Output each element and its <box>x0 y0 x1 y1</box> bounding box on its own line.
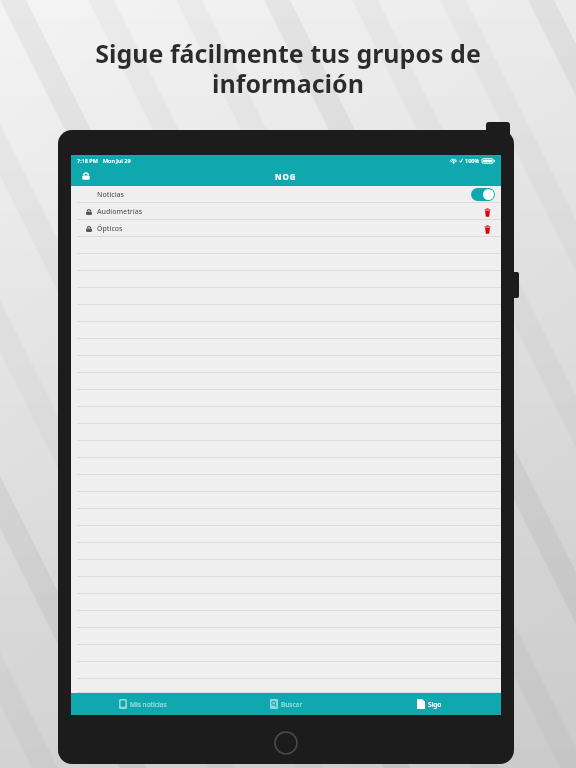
staticText: Mis noticias <box>130 700 167 709</box>
staticText: Sigo <box>428 700 442 709</box>
staticText: 7:18 PM <box>77 157 98 164</box>
button[interactable]: Toggle Noticias <box>471 188 495 201</box>
button[interactable]: Noticias <box>71 186 501 203</box>
button[interactable]: Lock <box>79 169 93 183</box>
staticText: Buscar <box>281 700 303 709</box>
staticText: 100% <box>465 157 480 164</box>
staticText: NOG <box>275 171 297 182</box>
staticText: Ópticos <box>97 224 123 234</box>
staticText: Audiometrías <box>97 207 143 217</box>
button[interactable]: Delete <box>479 221 495 237</box>
staticText: Noticias <box>97 190 125 200</box>
button[interactable]: Delete <box>479 204 495 220</box>
button[interactable]: Audiometrías <box>71 203 501 220</box>
staticText: Sigue fácilmente tus grupos de informaci… <box>36 36 540 101</box>
button[interactable]: Mis noticias <box>71 693 215 715</box>
button[interactable]: Buscar <box>215 693 358 715</box>
staticText: Mon Jul 29 <box>103 157 131 164</box>
button[interactable]: Sigo <box>358 693 501 715</box>
button[interactable]: Ópticos <box>71 220 501 237</box>
